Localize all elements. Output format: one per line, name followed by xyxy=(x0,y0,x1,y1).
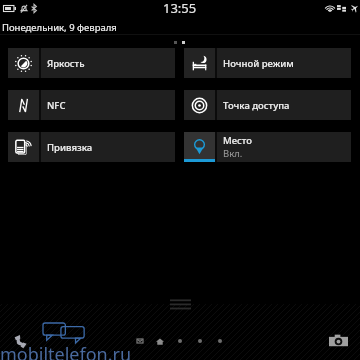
staticText: NFC xyxy=(47,99,66,112)
staticText: 13:55 xyxy=(163,0,197,17)
button[interactable]: Expand quick settings xyxy=(170,299,191,310)
button[interactable]: Messaging xyxy=(133,334,147,348)
button[interactable]: Ночной режим xyxy=(184,48,351,78)
staticText: Точка доступа xyxy=(223,99,290,112)
button[interactable]: Home xyxy=(152,333,168,349)
staticText: Привязка xyxy=(47,141,93,154)
button[interactable]: Место xyxy=(184,132,351,162)
staticText: Место xyxy=(223,134,252,147)
staticText: mobiltelefon.ru xyxy=(0,342,132,360)
button[interactable]: NFC xyxy=(8,90,175,120)
button[interactable]: Phone xyxy=(12,330,32,350)
staticText: Яркость xyxy=(47,57,85,70)
staticText: Вкл. xyxy=(223,147,243,160)
staticText: Ночной режим xyxy=(223,57,294,70)
staticText: Понедельник, 9 февраля xyxy=(2,21,117,34)
button[interactable]: Camera xyxy=(327,331,349,349)
button[interactable]: Точка доступа xyxy=(184,90,351,120)
button[interactable]: Привязка xyxy=(8,132,175,162)
button[interactable]: Яркость xyxy=(8,48,175,78)
